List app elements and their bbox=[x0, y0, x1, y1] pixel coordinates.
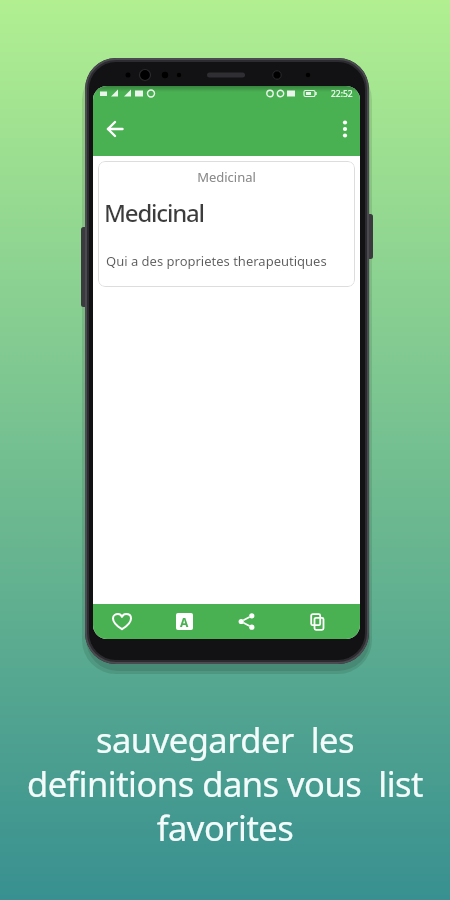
button[interactable] bbox=[93, 107, 137, 151]
staticText: Medicinal bbox=[98, 168, 355, 186]
staticText: Medicinal bbox=[104, 196, 204, 229]
staticText: sauvegarder les definitions dans vous li… bbox=[0, 716, 450, 851]
staticText: 22:52 bbox=[331, 88, 353, 100]
staticText: A bbox=[180, 614, 189, 630]
button[interactable] bbox=[228, 604, 264, 639]
staticText: Qui a des proprietes therapeutiques bbox=[106, 252, 327, 270]
button[interactable]: A bbox=[166, 604, 202, 639]
button[interactable] bbox=[330, 114, 360, 144]
button[interactable] bbox=[104, 604, 140, 639]
button[interactable] bbox=[299, 604, 335, 639]
